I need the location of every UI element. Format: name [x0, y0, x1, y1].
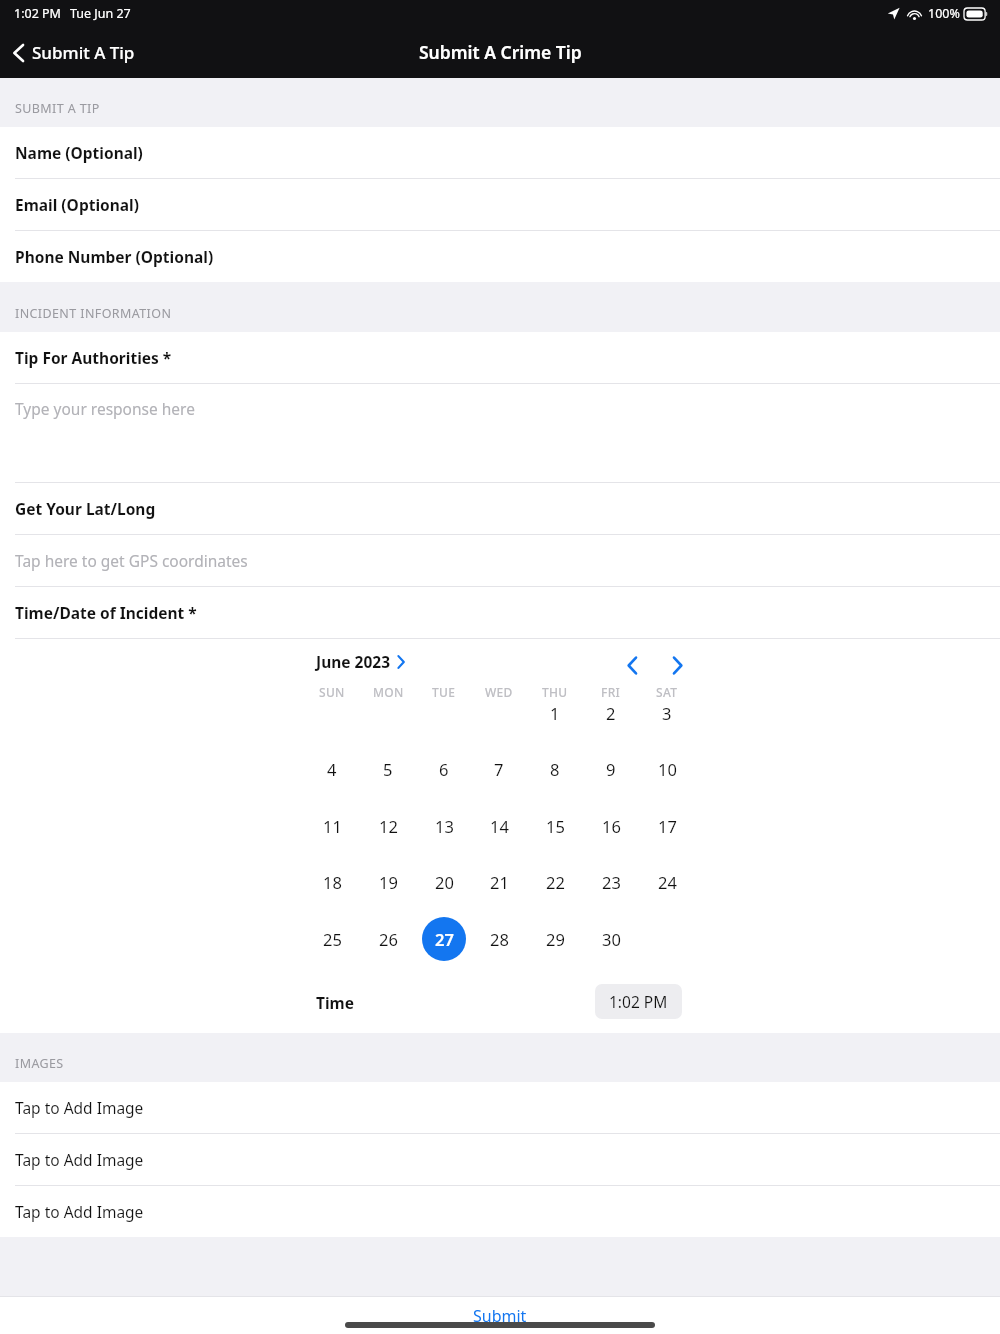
- button[interactable]: Tip For Authorities *: [0, 332, 1000, 383]
- staticText: 30: [602, 928, 621, 950]
- staticText: IMAGES: [15, 1055, 64, 1072]
- button[interactable]: 9: [589, 747, 633, 791]
- staticText: Email (Optional): [15, 194, 139, 215]
- staticText: 22: [546, 871, 565, 893]
- staticText: 7: [494, 758, 504, 780]
- button[interactable]: 8: [533, 747, 577, 791]
- button[interactable]: 15: [533, 804, 577, 848]
- button[interactable]: Tap here to get GPS coordinates: [0, 535, 1000, 586]
- button[interactable]: Email (Optional): [0, 179, 1000, 230]
- staticText: WED: [485, 684, 513, 700]
- staticText: Tap to Add Image: [15, 1097, 144, 1118]
- staticText: FRI: [601, 684, 621, 700]
- staticText: 28: [490, 928, 509, 950]
- staticText: 19: [379, 871, 398, 893]
- staticText: Time/Date of Incident *: [15, 602, 197, 623]
- staticText: June 2023: [316, 651, 391, 672]
- staticText: 9: [606, 758, 616, 780]
- button[interactable]: 6: [422, 747, 466, 791]
- button[interactable]: Name (Optional): [0, 127, 1000, 178]
- button[interactable]: 14: [477, 804, 521, 848]
- staticText: 4: [327, 758, 337, 780]
- button[interactable]: 10: [645, 747, 689, 791]
- staticText: 21: [490, 871, 509, 893]
- button[interactable]: Phone Number (Optional): [0, 231, 1000, 282]
- staticText: Type your response here: [15, 398, 195, 419]
- button[interactable]: 2: [589, 691, 633, 735]
- staticText: 100%: [928, 5, 960, 22]
- staticText: 1:02 PM: [14, 5, 61, 22]
- button[interactable]: 3: [645, 691, 689, 735]
- button[interactable]: Tap to Add Image: [0, 1082, 1000, 1133]
- staticText: 20: [435, 871, 454, 893]
- button[interactable]: 7: [477, 747, 521, 791]
- staticText: Get Your Lat/Long: [15, 498, 156, 519]
- staticText: 1: [550, 702, 560, 724]
- button[interactable]: 21: [477, 860, 521, 904]
- staticText: 23: [602, 871, 621, 893]
- staticText: THU: [542, 684, 568, 700]
- staticText: 24: [658, 871, 677, 893]
- button[interactable]: 28: [477, 917, 521, 961]
- button[interactable]: Type your response here: [0, 384, 1000, 482]
- button[interactable]: 29: [533, 917, 577, 961]
- staticText: 29: [546, 928, 565, 950]
- button[interactable]: 30: [589, 917, 633, 961]
- staticText: 12: [379, 815, 398, 837]
- staticText: 25: [323, 928, 342, 950]
- button[interactable]: 1: [533, 691, 577, 735]
- button[interactable]: Submit A Tip: [0, 35, 149, 70]
- staticText: 27: [435, 928, 454, 950]
- button[interactable]: 24: [645, 860, 689, 904]
- staticText: SAT: [656, 684, 678, 700]
- staticText: Tip For Authorities *: [15, 347, 172, 368]
- staticText: 18: [323, 871, 342, 893]
- button[interactable]: Tap to Add Image: [0, 1186, 1000, 1237]
- button[interactable]: 25: [310, 917, 354, 961]
- button[interactable]: 18: [310, 860, 354, 904]
- staticText: 6: [439, 758, 449, 780]
- staticText: 26: [379, 928, 398, 950]
- button[interactable]: 11: [310, 804, 354, 848]
- button[interactable]: 13: [422, 804, 466, 848]
- button[interactable]: 12: [366, 804, 410, 848]
- staticText: Submit: [473, 1305, 527, 1327]
- staticText: INCIDENT INFORMATION: [15, 305, 172, 322]
- staticText: 15: [546, 815, 565, 837]
- button[interactable]: 27: [422, 917, 466, 961]
- staticText: 17: [658, 815, 677, 837]
- staticText: 1:02 PM: [609, 991, 668, 1012]
- staticText: Name (Optional): [15, 142, 143, 163]
- staticText: Time: [316, 992, 354, 1013]
- button[interactable]: Previous month: [614, 647, 650, 683]
- staticText: Tap to Add Image: [15, 1201, 144, 1222]
- staticText: Submit A Crime Tip: [419, 40, 582, 64]
- staticText: 8: [550, 758, 560, 780]
- staticText: 3: [662, 702, 672, 724]
- button[interactable]: 19: [366, 860, 410, 904]
- button[interactable]: 1:02 PM: [595, 984, 682, 1019]
- button[interactable]: Get Your Lat/Long: [0, 483, 1000, 534]
- button[interactable]: Tap to Add Image: [0, 1134, 1000, 1185]
- staticText: TUE: [432, 684, 456, 700]
- button[interactable]: 16: [589, 804, 633, 848]
- staticText: 5: [383, 758, 393, 780]
- button[interactable]: 5: [366, 747, 410, 791]
- button[interactable]: Time/Date of Incident *: [0, 587, 1000, 638]
- staticText: 11: [323, 815, 342, 837]
- button[interactable]: June 2023: [316, 651, 405, 672]
- button[interactable]: 20: [422, 860, 466, 904]
- staticText: MON: [373, 684, 404, 700]
- staticText: 10: [658, 758, 677, 780]
- staticText: SUN: [319, 684, 345, 700]
- staticText: 14: [490, 815, 509, 837]
- staticText: 2: [606, 702, 616, 724]
- button[interactable]: Submit: [0, 1297, 1000, 1334]
- button[interactable]: 26: [366, 917, 410, 961]
- button[interactable]: Next month: [659, 647, 695, 683]
- staticText: SUBMIT A TIP: [15, 100, 100, 117]
- button[interactable]: 4: [310, 747, 354, 791]
- button[interactable]: 17: [645, 804, 689, 848]
- button[interactable]: 23: [589, 860, 633, 904]
- button[interactable]: 22: [533, 860, 577, 904]
